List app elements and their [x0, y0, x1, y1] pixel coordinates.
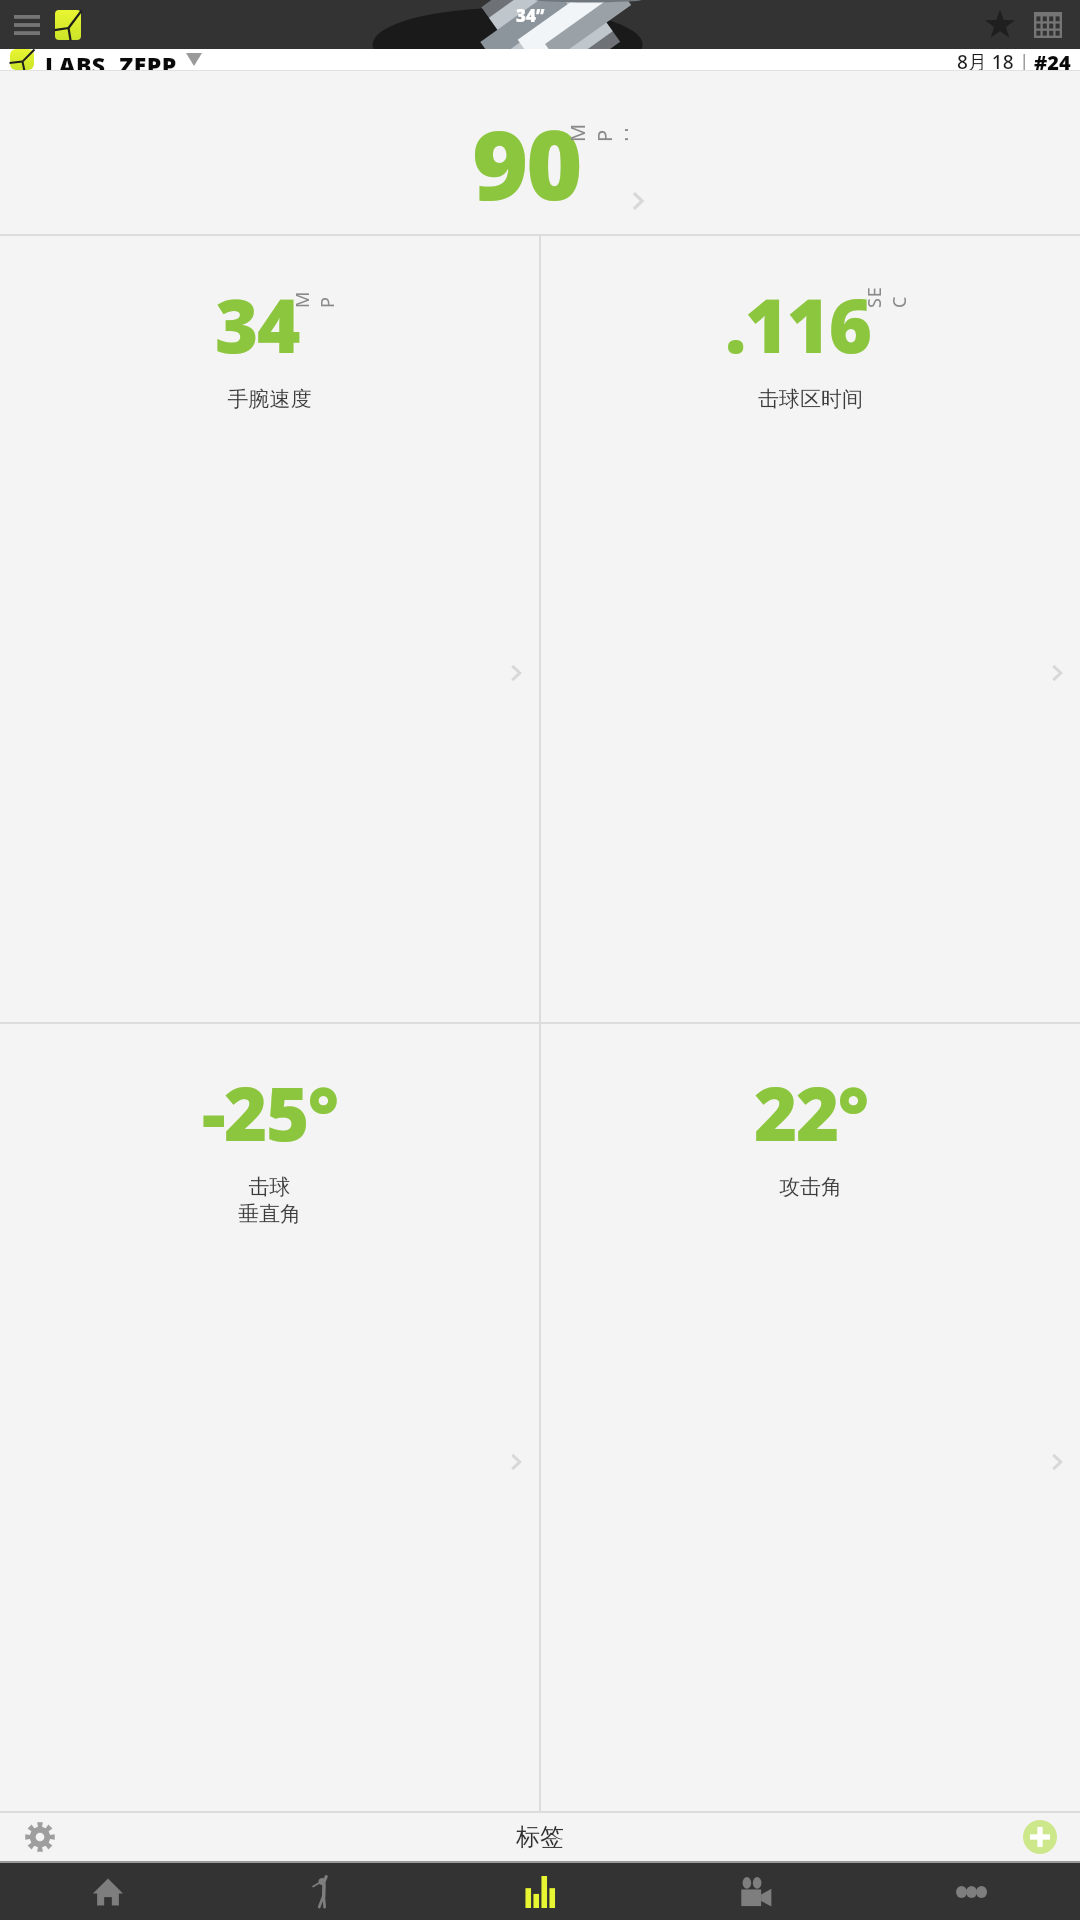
button[interactable]: Sessions: [1028, 5, 1068, 45]
staticText: -25°: [202, 1062, 338, 1163]
staticText: LABS, ZEPP: [45, 49, 177, 70]
staticText: 手腕速度: [26, 386, 513, 412]
button[interactable]: Add: [1018, 1815, 1062, 1859]
button[interactable]: 90: [0, 71, 1080, 234]
button[interactable]: Home: [0, 1863, 216, 1920]
button[interactable]: 34: [0, 236, 539, 1022]
staticText: 击球 垂直角: [26, 1174, 513, 1227]
button[interactable]: 标签: [508, 1814, 572, 1860]
button[interactable]: .116: [541, 236, 1080, 1022]
staticText: MPH: [290, 286, 336, 308]
button[interactable]: -25°: [0, 1024, 539, 1811]
staticText: 击球区时间: [567, 386, 1054, 412]
button[interactable]: Settings: [18, 1815, 62, 1859]
button[interactable]: Club: [55, 10, 81, 40]
staticText: .116: [725, 274, 871, 375]
staticText: #24: [1034, 49, 1071, 70]
button[interactable]: Menu: [12, 10, 42, 40]
staticText: 8月 18: [957, 49, 1014, 70]
staticText: 22°: [754, 1062, 868, 1163]
button[interactable]: LABS, ZEPP: [0, 49, 1080, 70]
button[interactable]: Favorite: [980, 5, 1020, 45]
staticText: 34”: [516, 4, 545, 27]
staticText: 34: [215, 274, 299, 375]
button[interactable]: Stats: [432, 1863, 648, 1920]
staticText: |: [1019, 49, 1030, 70]
button[interactable]: Swing: [216, 1863, 432, 1920]
button[interactable]: 22°: [541, 1024, 1080, 1811]
button[interactable]: More: [864, 1863, 1080, 1920]
staticText: SEC: [862, 286, 908, 308]
staticText: MPH: [564, 116, 628, 142]
button[interactable]: Video: [648, 1863, 864, 1920]
staticText: 标签: [516, 1822, 564, 1852]
staticText: 攻击角: [567, 1174, 1054, 1200]
staticText: 90: [472, 97, 581, 228]
